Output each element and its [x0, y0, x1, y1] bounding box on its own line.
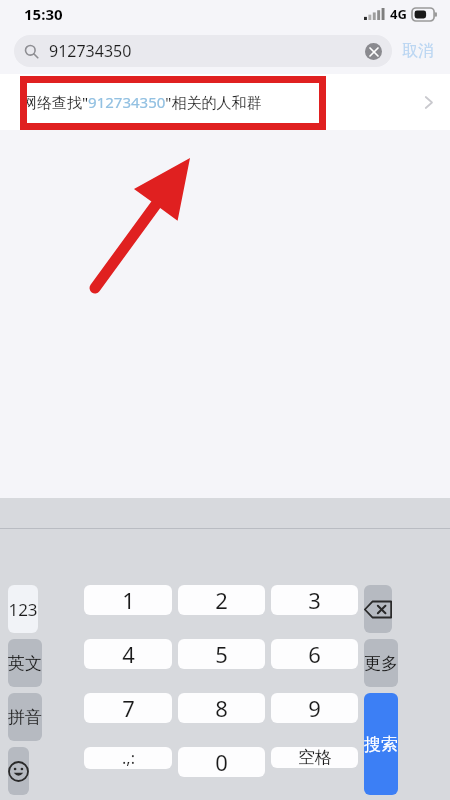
button[interactable]: 网络查找"912734350"相关的人和群 — [0, 74, 450, 130]
button[interactable]: 取消 — [392, 35, 436, 67]
button[interactable]: 搜索 — [364, 693, 398, 795]
button[interactable]: 8 — [178, 693, 265, 723]
staticText: 4 — [122, 639, 135, 669]
staticText: 取消 — [402, 41, 434, 61]
button[interactable]: 4 — [84, 639, 172, 669]
staticText: 3 — [308, 585, 321, 615]
staticText: 更多 — [364, 653, 398, 674]
button[interactable]: 2 — [178, 585, 265, 615]
staticText: 1 — [122, 585, 135, 615]
staticText: 15:30 — [24, 4, 63, 24]
button[interactable]: 0 — [178, 747, 265, 777]
button[interactable]: 3 — [271, 585, 358, 615]
button[interactable]: 912734350 — [14, 35, 392, 67]
button[interactable]: 英文 — [8, 639, 42, 687]
button[interactable]: Backspace — [364, 585, 392, 633]
button[interactable]: 空格 — [271, 747, 358, 768]
button[interactable]: .,: — [84, 747, 172, 769]
staticText: 6 — [308, 639, 321, 669]
staticText: 912734350 — [49, 40, 132, 62]
staticText: 2 — [215, 585, 228, 615]
staticText: 7 — [122, 693, 135, 723]
button[interactable]: Clear — [365, 43, 382, 60]
button[interactable]: Emoji — [8, 747, 29, 795]
staticText: 搜索 — [364, 734, 398, 755]
staticText: 9 — [308, 693, 321, 723]
button[interactable]: 6 — [271, 639, 358, 669]
staticText: 拼音 — [8, 707, 42, 728]
button[interactable]: 123 — [8, 585, 38, 633]
staticText: 0 — [215, 747, 228, 777]
button[interactable]: 9 — [271, 693, 358, 723]
button[interactable]: 7 — [84, 693, 172, 723]
button[interactable]: 5 — [178, 639, 265, 669]
staticText: 网络查找"912734350"相关的人和群 — [22, 92, 262, 112]
staticText: 4G — [390, 5, 407, 23]
staticText: 5 — [215, 639, 228, 669]
button[interactable]: 拼音 — [8, 693, 42, 741]
staticText: 英文 — [8, 653, 42, 674]
staticText: 空格 — [298, 747, 332, 768]
button[interactable]: 更多 — [364, 639, 398, 687]
staticText: 8 — [215, 693, 228, 723]
staticText: .,: — [122, 747, 135, 769]
button[interactable]: 1 — [84, 585, 172, 615]
staticText: 123 — [8, 598, 38, 621]
